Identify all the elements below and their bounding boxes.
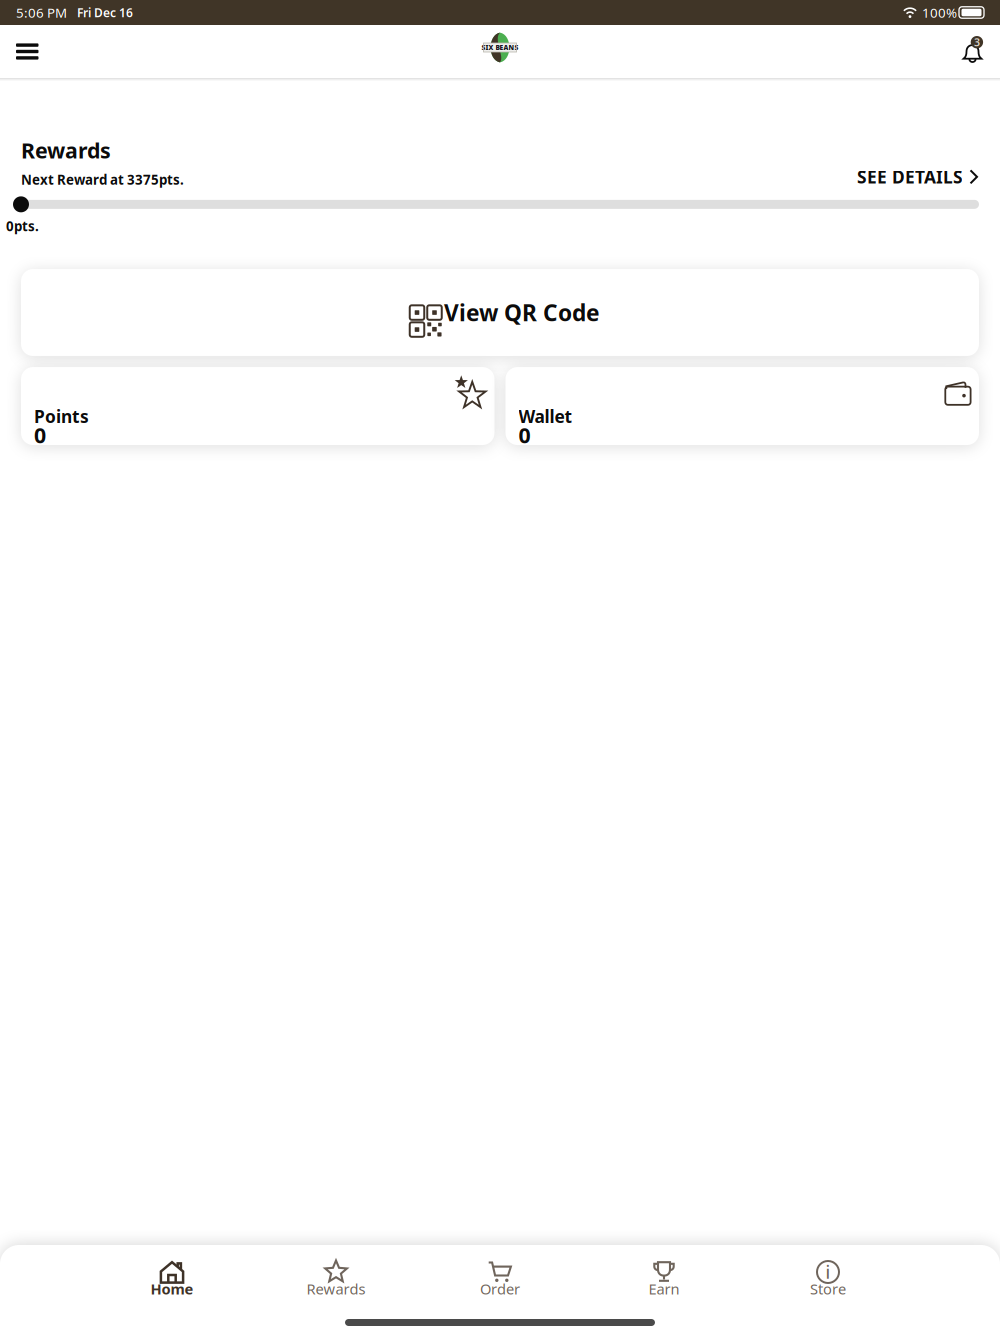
button[interactable]: SEE DETAILS <box>857 165 979 188</box>
staticText: 0pts. <box>6 217 39 235</box>
button[interactable]: Wallet <box>505 367 979 445</box>
staticText: 100% <box>922 4 957 21</box>
staticText: 0 <box>34 421 46 449</box>
staticText: Earn <box>648 1279 679 1298</box>
staticText: 5:06 PM <box>16 4 67 21</box>
staticText: Store <box>810 1279 846 1298</box>
staticText: Fri Dec 16 <box>77 4 133 20</box>
staticText: Home <box>150 1279 193 1298</box>
button[interactable]: Order <box>418 1256 582 1302</box>
staticText: Rewards <box>21 136 111 164</box>
staticText: i <box>825 1260 830 1283</box>
staticText: Rewards <box>306 1279 365 1298</box>
button[interactable]: Points <box>21 367 494 445</box>
staticText: SEE DETAILS <box>857 165 963 188</box>
staticText: View QR Code <box>444 297 600 328</box>
staticText: Points <box>34 405 89 428</box>
button[interactable]: View QR Code <box>21 269 979 356</box>
button[interactable]: i <box>746 1256 910 1302</box>
staticText: Next Reward at 3375pts. <box>21 171 184 188</box>
staticText: SIX BEANS <box>481 43 518 52</box>
button[interactable]: Home <box>90 1256 254 1302</box>
button[interactable]: Earn <box>582 1256 746 1302</box>
staticText: Wallet <box>518 405 572 428</box>
button[interactable]: Menu <box>0 31 54 72</box>
button[interactable]: Rewards <box>254 1256 418 1302</box>
staticText: 0 <box>518 421 530 449</box>
staticText: Order <box>480 1279 520 1298</box>
button[interactable]: Notifications <box>945 30 1000 72</box>
staticText: 3 <box>974 35 980 49</box>
